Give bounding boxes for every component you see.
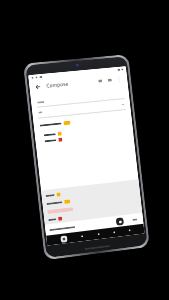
button[interactable]: Assistant <box>60 235 68 243</box>
button[interactable] <box>41 181 140 200</box>
button[interactable]: Send <box>128 215 140 224</box>
button[interactable]: Attach file <box>95 76 105 86</box>
button[interactable] <box>42 189 140 208</box>
button[interactable]: Back <box>33 82 43 92</box>
button[interactable] <box>43 197 141 217</box>
button[interactable] <box>32 99 131 118</box>
button[interactable] <box>31 89 129 107</box>
staticText: Compose <box>46 80 69 90</box>
button[interactable]: Emoji <box>116 217 124 226</box>
button[interactable] <box>44 205 142 225</box>
button[interactable]: More options <box>114 74 124 84</box>
button[interactable]: Send <box>105 75 114 85</box>
